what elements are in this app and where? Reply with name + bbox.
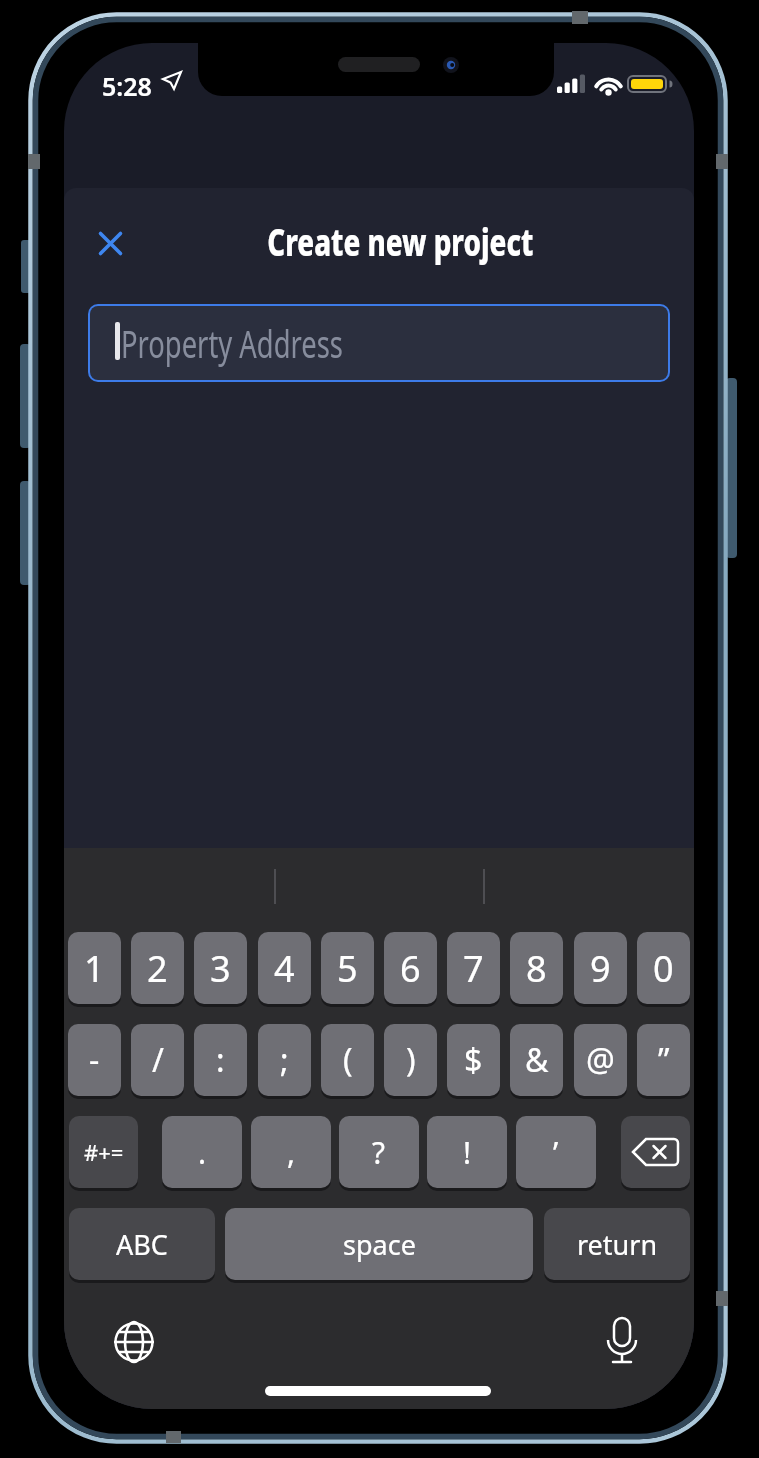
button[interactable]: @ xyxy=(574,1024,627,1096)
staticText: ( xyxy=(343,1038,353,1082)
staticText: @ xyxy=(586,1038,615,1082)
staticText: . xyxy=(198,1132,207,1173)
button[interactable]: ( xyxy=(321,1024,374,1096)
button[interactable]: ” xyxy=(637,1024,690,1096)
staticText: ! xyxy=(463,1132,472,1173)
button[interactable]: & xyxy=(510,1024,563,1096)
staticText: 4 xyxy=(274,944,295,993)
button[interactable]: 9 xyxy=(574,932,627,1004)
button[interactable]: ? xyxy=(339,1116,419,1188)
button[interactable]: , xyxy=(251,1116,331,1188)
button[interactable]: - xyxy=(68,1024,121,1096)
button[interactable] xyxy=(604,1318,640,1366)
staticText: ” xyxy=(658,1038,670,1082)
button[interactable]: #+= xyxy=(69,1116,138,1188)
button[interactable]: 1 xyxy=(68,932,121,1004)
button[interactable]: . xyxy=(162,1116,242,1188)
staticText: ’ xyxy=(553,1132,559,1173)
button[interactable]: Property Address xyxy=(88,304,670,382)
staticText: 3 xyxy=(210,944,231,993)
button[interactable]: 2 xyxy=(131,932,184,1004)
button[interactable] xyxy=(114,1322,154,1362)
button[interactable]: ! xyxy=(427,1116,507,1188)
staticText: 5 xyxy=(337,944,358,993)
button[interactable]: : xyxy=(194,1024,247,1096)
button[interactable]: / xyxy=(131,1024,184,1096)
staticText: #+= xyxy=(84,1137,124,1167)
button[interactable]: 0 xyxy=(637,932,690,1004)
staticText: ? xyxy=(372,1132,386,1173)
staticText: 5:28 xyxy=(102,69,152,103)
staticText: ) xyxy=(406,1038,416,1082)
button[interactable]: ’ xyxy=(516,1116,596,1188)
staticText: 2 xyxy=(147,944,168,993)
button[interactable]: 6 xyxy=(384,932,437,1004)
button[interactable]: space xyxy=(225,1208,533,1280)
button[interactable]: $ xyxy=(447,1024,500,1096)
staticText: 9 xyxy=(590,944,611,993)
button[interactable]: 3 xyxy=(194,932,247,1004)
button[interactable]: return xyxy=(544,1208,690,1280)
staticText: , xyxy=(287,1132,296,1173)
button[interactable]: ) xyxy=(384,1024,437,1096)
button[interactable]: ABC xyxy=(69,1208,215,1280)
staticText: / xyxy=(152,1038,164,1082)
staticText: ; xyxy=(280,1038,289,1082)
button[interactable] xyxy=(621,1116,690,1188)
staticText: ABC xyxy=(116,1226,168,1263)
button[interactable]: 8 xyxy=(510,932,563,1004)
staticText: return xyxy=(577,1226,658,1263)
staticText: Property Address xyxy=(121,317,343,369)
staticText: $ xyxy=(464,1038,483,1082)
staticText: - xyxy=(89,1038,100,1082)
staticText: : xyxy=(216,1038,225,1082)
button[interactable]: 4 xyxy=(258,932,311,1004)
staticText: 7 xyxy=(463,944,484,993)
button[interactable] xyxy=(84,217,136,269)
button[interactable]: ; xyxy=(258,1024,311,1096)
staticText: Create new project xyxy=(267,215,534,267)
staticText: space xyxy=(343,1226,416,1263)
staticText: 1 xyxy=(84,944,105,993)
button[interactable]: 7 xyxy=(447,932,500,1004)
staticText: 0 xyxy=(653,944,674,993)
button[interactable]: 5 xyxy=(321,932,374,1004)
staticText: & xyxy=(525,1038,549,1082)
staticText: 8 xyxy=(526,944,547,993)
staticText: 6 xyxy=(400,944,421,993)
